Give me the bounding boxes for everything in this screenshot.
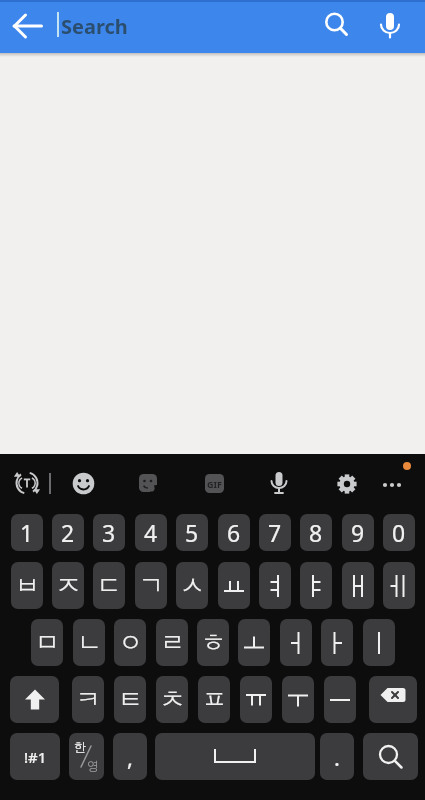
staticText: 7 bbox=[268, 517, 282, 548]
button[interactable]: ㄷ bbox=[93, 562, 125, 609]
staticText: , bbox=[127, 742, 133, 772]
button[interactable]: ㅇ bbox=[114, 619, 146, 666]
button[interactable]: ㄹ bbox=[156, 619, 188, 666]
button[interactable]: ㅋ bbox=[72, 676, 104, 723]
button[interactable]: 6 bbox=[218, 514, 250, 551]
button[interactable]: ㅌ bbox=[114, 676, 146, 723]
button[interactable] bbox=[317, 6, 357, 46]
staticText: ㄴ bbox=[77, 627, 102, 658]
staticText: ㅇ bbox=[118, 627, 143, 658]
button[interactable]: ㅈ bbox=[52, 562, 84, 609]
staticText: ㅎ bbox=[201, 627, 226, 658]
staticText: ㅋ bbox=[76, 684, 101, 715]
staticText: . bbox=[334, 742, 340, 772]
staticText: 2 bbox=[61, 517, 75, 548]
button[interactable]: ㄱ bbox=[135, 562, 167, 609]
button[interactable]: 3 bbox=[93, 514, 125, 551]
button[interactable]: !#1 bbox=[10, 733, 60, 780]
staticText: 6 bbox=[227, 517, 241, 548]
button[interactable] bbox=[383, 562, 415, 609]
button[interactable]: 8 bbox=[300, 514, 332, 551]
staticText: 4 bbox=[144, 517, 158, 548]
button[interactable]: 0 bbox=[383, 514, 415, 551]
button[interactable]: 9 bbox=[342, 514, 374, 551]
button[interactable]: 1 bbox=[11, 514, 43, 551]
staticText: ㄹ bbox=[160, 627, 185, 658]
staticText: ㅊ bbox=[160, 684, 185, 715]
staticText: 8 bbox=[309, 517, 323, 548]
button[interactable] bbox=[265, 469, 293, 497]
button[interactable] bbox=[218, 562, 250, 609]
button[interactable]: 4 bbox=[135, 514, 167, 551]
button[interactable] bbox=[155, 733, 315, 780]
button[interactable]: 7 bbox=[259, 514, 291, 551]
button[interactable] bbox=[370, 5, 410, 45]
staticText: 0 bbox=[392, 517, 406, 548]
button[interactable] bbox=[378, 462, 412, 496]
button[interactable]: ㅊ bbox=[156, 676, 188, 723]
button[interactable] bbox=[369, 676, 417, 723]
staticText: ㅌ bbox=[118, 684, 143, 715]
staticText: ㅁ bbox=[35, 627, 60, 658]
button[interactable] bbox=[342, 562, 374, 609]
button[interactable] bbox=[324, 676, 356, 723]
button[interactable] bbox=[259, 562, 291, 609]
staticText: ㅍ bbox=[202, 684, 227, 715]
button[interactable] bbox=[139, 474, 157, 492]
button[interactable] bbox=[282, 676, 314, 723]
button[interactable] bbox=[363, 733, 418, 780]
button[interactable]: ㅎ bbox=[197, 619, 229, 666]
button[interactable]: ㅂ bbox=[11, 562, 43, 609]
staticText: ㅅ bbox=[180, 570, 205, 601]
staticText: ㅈ bbox=[56, 570, 81, 601]
button[interactable] bbox=[280, 619, 312, 666]
staticText: ㄷ bbox=[97, 570, 122, 601]
button[interactable] bbox=[300, 562, 332, 609]
button[interactable]: 2 bbox=[52, 514, 84, 551]
button[interactable] bbox=[333, 470, 361, 498]
button[interactable] bbox=[13, 11, 43, 41]
staticText: ㅂ bbox=[15, 570, 40, 601]
button[interactable]: ㅁ bbox=[31, 619, 63, 666]
staticText: GIF bbox=[207, 478, 222, 490]
button[interactable] bbox=[13, 469, 41, 497]
staticText: ㄱ bbox=[139, 570, 164, 601]
staticText: 영 bbox=[87, 758, 99, 773]
staticText: Search bbox=[61, 13, 128, 40]
button[interactable] bbox=[363, 619, 395, 666]
button[interactable]: 5 bbox=[176, 514, 208, 551]
staticText: !#1 bbox=[24, 747, 47, 767]
button[interactable]: , bbox=[113, 733, 147, 780]
button[interactable]: GIF bbox=[205, 474, 224, 493]
button[interactable] bbox=[238, 619, 270, 666]
staticText: 3 bbox=[102, 517, 116, 548]
button[interactable]: ㅅ bbox=[176, 562, 208, 609]
button[interactable] bbox=[69, 469, 98, 498]
button[interactable]: ㄴ bbox=[73, 619, 105, 666]
button[interactable] bbox=[321, 619, 353, 666]
button[interactable]: . bbox=[320, 733, 354, 780]
button[interactable] bbox=[240, 676, 272, 723]
staticText: 1 bbox=[20, 517, 34, 548]
button[interactable] bbox=[10, 676, 59, 723]
staticText: 9 bbox=[351, 517, 365, 548]
staticText: 한 bbox=[74, 739, 86, 754]
button[interactable]: 한 bbox=[69, 733, 104, 780]
staticText: 5 bbox=[185, 517, 199, 548]
button[interactable]: ㅍ bbox=[198, 676, 230, 723]
